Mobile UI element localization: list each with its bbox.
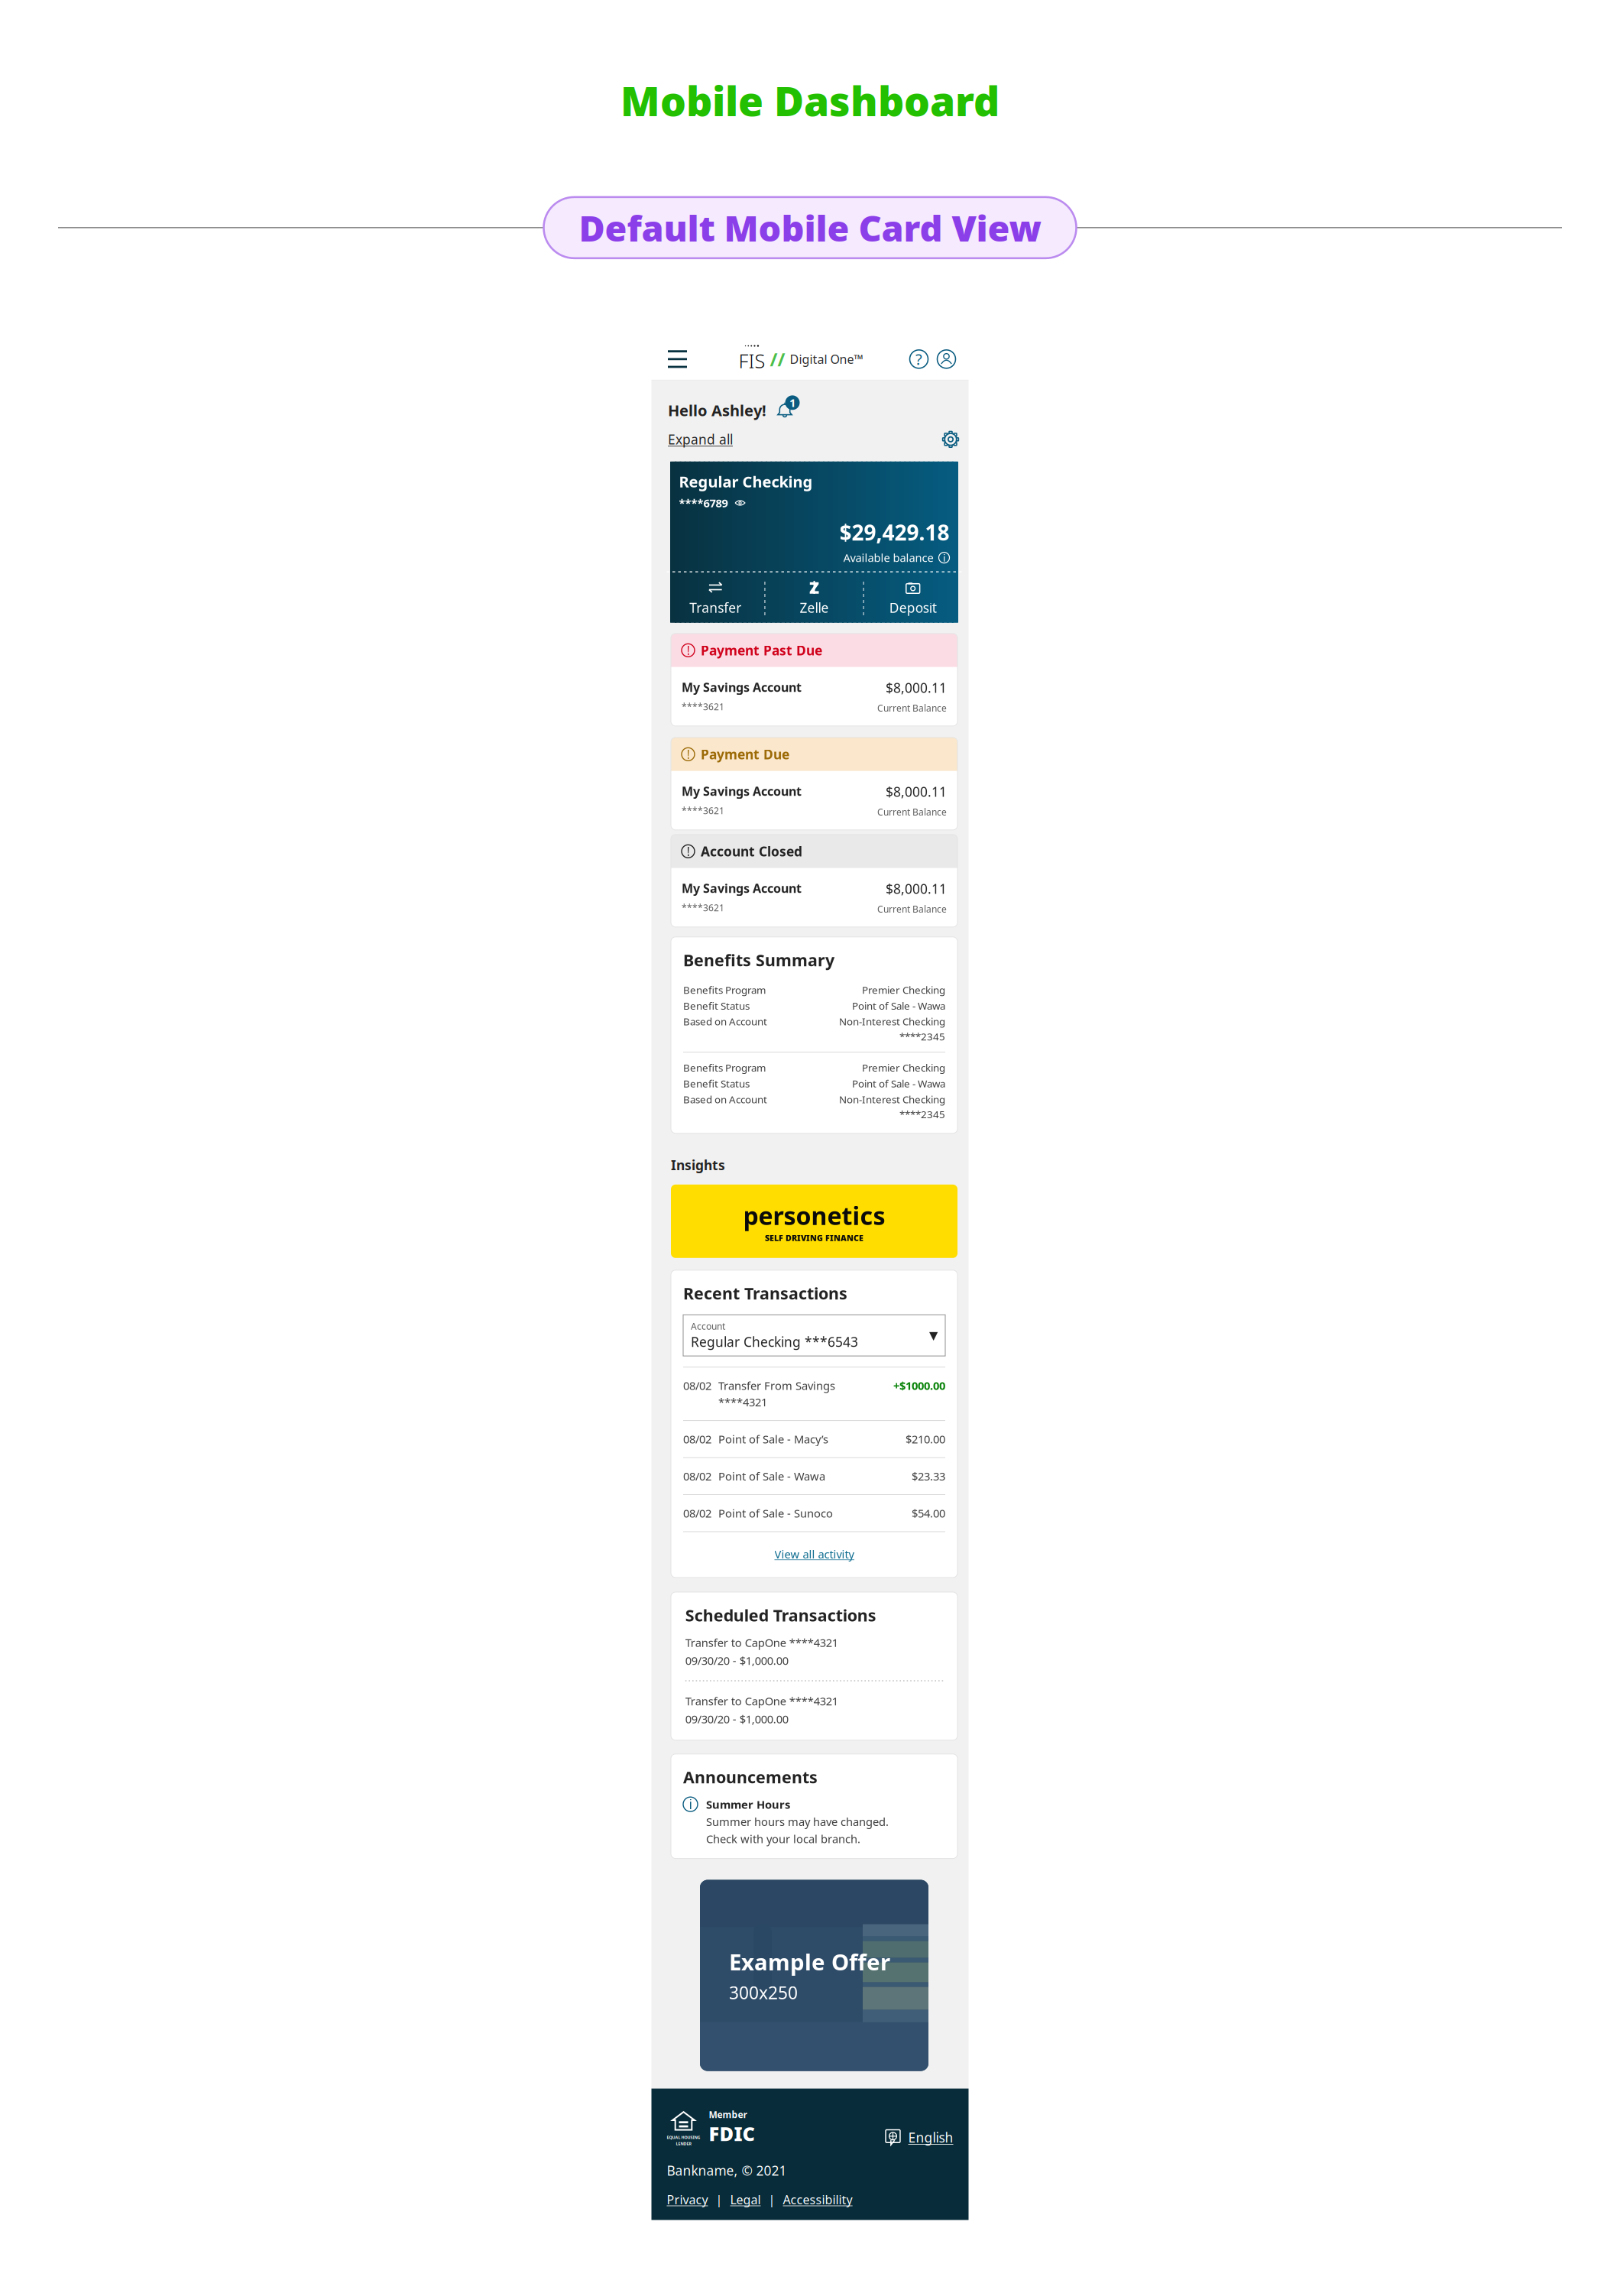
staticText: ****3621 bbox=[682, 902, 724, 914]
staticText: ▼ bbox=[929, 1329, 938, 1342]
staticText: Check with your local branch. bbox=[706, 1831, 860, 1846]
staticText: ****2345 bbox=[899, 1030, 945, 1043]
staticText: i bbox=[689, 1795, 692, 1813]
staticText: Non-Interest Checking bbox=[839, 1093, 945, 1106]
staticText: Transfer bbox=[689, 599, 741, 616]
staticText: Deposit bbox=[889, 599, 937, 616]
staticText: Insights bbox=[671, 1156, 725, 1174]
staticText: Recent Transactions bbox=[683, 1282, 847, 1304]
staticText: $23.33 bbox=[912, 1469, 945, 1484]
staticText: Summer Hours bbox=[706, 1797, 790, 1812]
staticText: $29,429.18 bbox=[839, 518, 949, 546]
staticText: Premier Checking bbox=[862, 983, 945, 997]
staticText: $8,000.11 bbox=[886, 880, 947, 898]
staticText: LENDER bbox=[676, 2141, 691, 2146]
staticText: $210.00 bbox=[906, 1432, 945, 1447]
button[interactable]: Accessibility bbox=[783, 2191, 852, 2208]
staticText: ! bbox=[687, 642, 690, 658]
staticText: Non-Interest Checking bbox=[839, 1015, 945, 1028]
staticText: Point of Sale - Wawa bbox=[852, 999, 945, 1012]
staticText: Based on Account bbox=[683, 1093, 767, 1106]
staticText: Account bbox=[691, 1320, 725, 1332]
button[interactable]: Expand all bbox=[668, 431, 733, 448]
staticText: Current Balance bbox=[877, 702, 947, 714]
staticText: Point of Sale - Wawa bbox=[852, 1077, 945, 1090]
button[interactable]: Deposit bbox=[864, 572, 962, 624]
staticText: ****4321 bbox=[718, 1395, 767, 1409]
staticText: Account Closed bbox=[701, 843, 802, 860]
button[interactable]: Help bbox=[906, 338, 932, 380]
staticText: Benefits Program bbox=[683, 1061, 766, 1074]
staticText: Expand all bbox=[668, 431, 733, 448]
button[interactable]: Profile bbox=[932, 338, 961, 380]
button[interactable]: Transfer bbox=[667, 572, 764, 624]
staticText: Default Mobile Card View bbox=[579, 204, 1041, 251]
staticText: Digital One™ bbox=[790, 351, 863, 367]
button[interactable]: View all activity bbox=[683, 1532, 945, 1576]
staticText: 300x250 bbox=[729, 1981, 798, 2004]
staticText: English bbox=[908, 2129, 953, 2146]
staticText: Mobile Dashboard bbox=[620, 73, 1000, 127]
staticText: My Savings Account bbox=[682, 880, 802, 896]
staticText: 1 bbox=[789, 395, 795, 410]
staticText: 09/30/20 - $1,000.00 bbox=[685, 1712, 788, 1726]
staticText: Privacy bbox=[667, 2191, 708, 2208]
staticText: Example Offer bbox=[729, 1947, 890, 1977]
staticText: Announcements bbox=[683, 1766, 818, 1788]
staticText: Payment Past Due bbox=[701, 641, 822, 659]
staticText: 08/02 bbox=[683, 1506, 711, 1521]
button[interactable]: Legal bbox=[730, 2191, 761, 2208]
button[interactable]: Account bbox=[683, 1315, 945, 1356]
staticText: FIS bbox=[739, 348, 765, 373]
staticText: ****3621 bbox=[682, 805, 724, 817]
button[interactable]: Privacy bbox=[667, 2191, 708, 2208]
staticText: ****3621 bbox=[682, 701, 724, 713]
staticText: My Savings Account bbox=[682, 679, 802, 695]
staticText: ! bbox=[687, 843, 690, 859]
staticText: Summer hours may have changed. bbox=[706, 1814, 889, 1829]
staticText: Current Balance bbox=[877, 806, 947, 818]
staticText: // bbox=[770, 347, 785, 371]
staticText: Benefits Summary bbox=[683, 949, 834, 971]
staticText: Point of Sale - Macy’s bbox=[718, 1432, 828, 1447]
staticText: 08/02 bbox=[683, 1378, 711, 1393]
staticText: Point of Sale - Sunoco bbox=[718, 1506, 833, 1521]
button[interactable]: English bbox=[885, 2129, 953, 2146]
staticText: Transfer to CapOne ****4321 bbox=[685, 1694, 838, 1709]
staticText: Current Balance bbox=[877, 903, 947, 915]
staticText: Hello Ashley! bbox=[668, 400, 766, 420]
staticText: Payment Due bbox=[701, 745, 789, 763]
staticText: Premier Checking bbox=[862, 1061, 945, 1074]
staticText: | bbox=[716, 2191, 723, 2208]
staticText: FDIC bbox=[709, 2121, 755, 2146]
staticText: Available balance bbox=[843, 550, 933, 565]
staticText: Regular Checking bbox=[679, 471, 813, 492]
staticText: Bankname, © 2021 bbox=[667, 2162, 787, 2179]
staticText: View all activity bbox=[774, 1547, 854, 1561]
staticText: Scheduled Transactions bbox=[685, 1604, 876, 1626]
button[interactable]: Settings bbox=[941, 429, 961, 449]
staticText: +$1000.00 bbox=[893, 1378, 945, 1393]
staticText: Transfer From Savings bbox=[718, 1378, 835, 1393]
staticText: $8,000.11 bbox=[886, 783, 947, 800]
staticText: 08/02 bbox=[683, 1432, 711, 1447]
staticText: $54.00 bbox=[912, 1506, 945, 1521]
staticText: i bbox=[943, 551, 945, 564]
staticText: personetics bbox=[743, 1199, 885, 1232]
staticText: ? bbox=[915, 349, 922, 369]
staticText: 09/30/20 - $1,000.00 bbox=[685, 1653, 788, 1668]
staticText: Member bbox=[709, 2108, 747, 2121]
staticText: 08/02 bbox=[683, 1469, 711, 1484]
staticText: Zelle bbox=[800, 599, 829, 616]
staticText: $8,000.11 bbox=[886, 679, 947, 697]
staticText: Benefit Status bbox=[683, 1077, 750, 1090]
button[interactable]: Menu bbox=[659, 338, 696, 380]
staticText: Regular Checking ***6543 bbox=[691, 1333, 858, 1351]
staticText: Point of Sale - Wawa bbox=[718, 1469, 825, 1484]
staticText: Z bbox=[809, 577, 819, 598]
staticText: Transfer to CapOne ****4321 bbox=[685, 1635, 838, 1650]
staticText: SELF DRIVING FINANCE bbox=[765, 1232, 863, 1243]
staticText: ****2345 bbox=[899, 1108, 945, 1121]
button[interactable]: Z bbox=[765, 572, 863, 624]
staticText: Benefits Program bbox=[683, 983, 766, 997]
